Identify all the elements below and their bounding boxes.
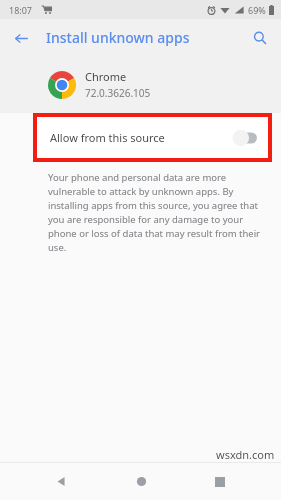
staticText: Your phone and personal data are more vu… bbox=[48, 171, 267, 254]
staticText: wsxdn.com bbox=[216, 447, 275, 462]
staticText: Chrome bbox=[85, 69, 127, 84]
button[interactable]: Back bbox=[42, 463, 80, 500]
button[interactable]: Search bbox=[245, 23, 275, 53]
staticText: 69% bbox=[248, 4, 266, 16]
button[interactable]: Chrome bbox=[0, 56, 281, 113]
staticText: 18:07 bbox=[9, 4, 33, 16]
button[interactable]: Home bbox=[122, 463, 160, 500]
button[interactable]: Recent apps bbox=[201, 463, 239, 500]
button[interactable]: Allow from this source bbox=[37, 117, 268, 158]
staticText: Install unknown apps bbox=[46, 28, 190, 47]
staticText: Allow from this source bbox=[50, 130, 232, 145]
button[interactable]: Back bbox=[6, 23, 36, 53]
staticText: 72.0.3626.105 bbox=[85, 86, 151, 100]
